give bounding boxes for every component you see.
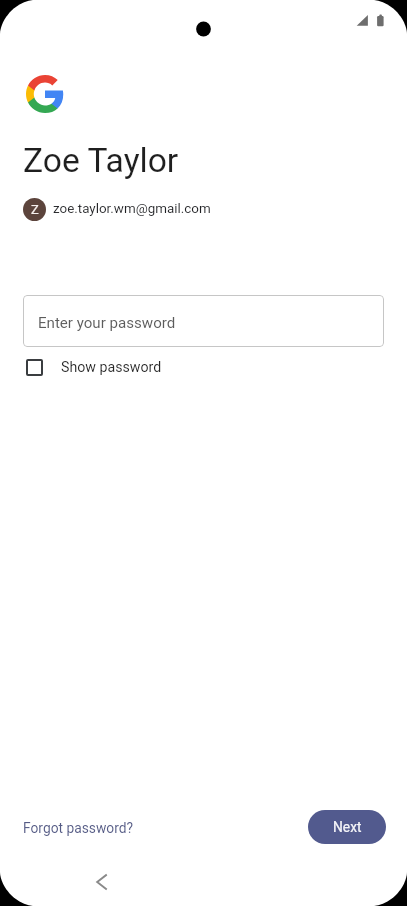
button[interactable]: Enter your password [23, 295, 384, 347]
staticText: Forgot password? [23, 820, 134, 836]
staticText: Zoe Taylor [23, 141, 179, 180]
staticText: Next [333, 819, 362, 835]
staticText: zoe.taylor.wm@gmail.com [53, 201, 211, 217]
staticText: Enter your password [38, 314, 176, 332]
button[interactable]: Forgot password? [23, 820, 134, 836]
staticText: Z [31, 202, 39, 217]
button[interactable]: Show password [26, 358, 162, 376]
button[interactable]: Z [23, 197, 211, 221]
button[interactable]: Next [308, 810, 386, 844]
staticText: Show password [61, 359, 162, 376]
button[interactable]: Back [82, 862, 122, 902]
